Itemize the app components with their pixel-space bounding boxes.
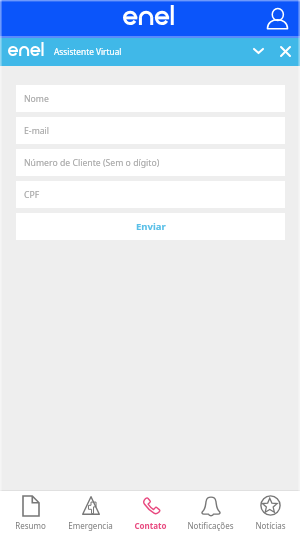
button[interactable]: Enviar (16, 213, 285, 240)
button[interactable]: Contato (120, 493, 180, 531)
button[interactable]: E-mail (16, 117, 285, 144)
staticText: Contato (134, 520, 167, 531)
staticText: Enviar (136, 220, 166, 233)
staticText: Resumo (15, 520, 46, 531)
staticText: Emergencia (68, 520, 113, 531)
button[interactable]: Número de Cliente (Sem o dígito) (16, 149, 285, 176)
button[interactable]: Notificações (180, 493, 240, 531)
button[interactable]: Resumo (0, 493, 60, 531)
staticText: Nome (24, 93, 49, 105)
staticText: Assistente Virtual (54, 46, 122, 57)
button[interactable]: Emergencia (60, 493, 120, 531)
button[interactable]: CPF (16, 181, 285, 208)
staticText: Notícias (255, 520, 286, 531)
staticText: Notificações (187, 520, 234, 531)
staticText: E-mail (24, 125, 50, 137)
button[interactable]: Minimize (247, 40, 269, 62)
button[interactable]: Notícias (240, 493, 300, 531)
button[interactable]: Account (263, 4, 291, 32)
staticText: Número de Cliente (Sem o dígito) (24, 157, 160, 169)
button[interactable]: Close (274, 40, 296, 62)
button[interactable]: Nome (16, 85, 285, 112)
staticText: CPF (24, 189, 40, 201)
